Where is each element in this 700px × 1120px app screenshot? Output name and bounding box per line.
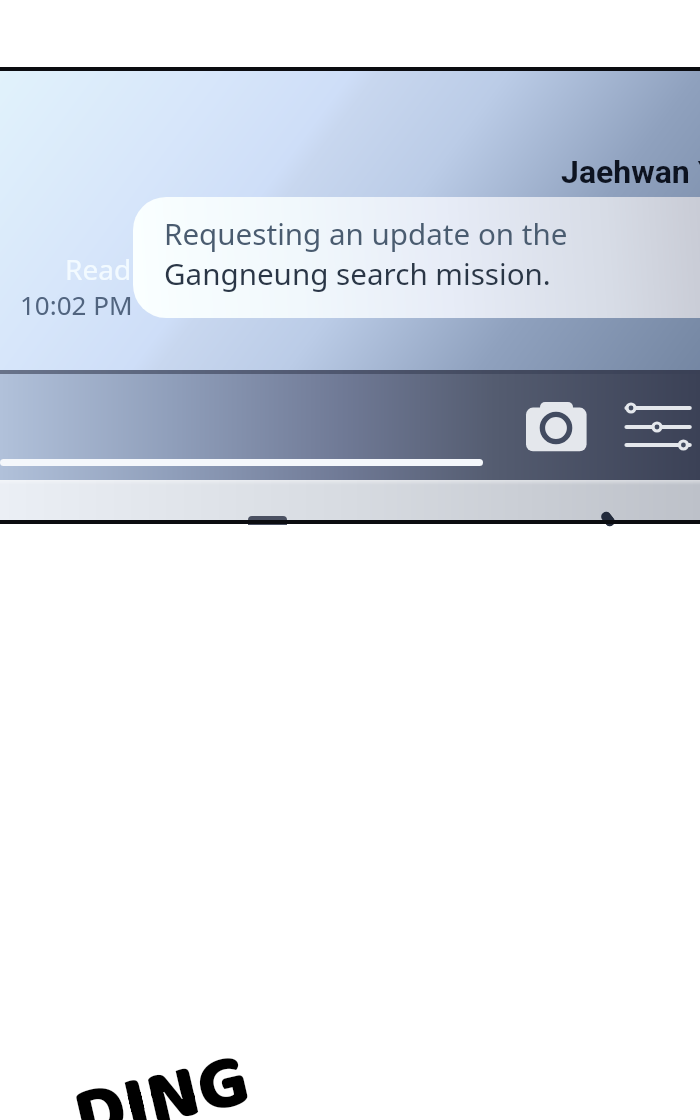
- button[interactable]: Camera: [522, 398, 592, 454]
- button[interactable]: Requesting an update on the: [133, 197, 700, 318]
- staticText: DING: [62, 1021, 261, 1120]
- staticText: 10:02 PM: [20, 287, 133, 322]
- staticText: Read: [65, 250, 132, 288]
- staticText: Jaehwan Y: [561, 153, 700, 191]
- button[interactable]: Settings: [620, 398, 696, 454]
- staticText: Gangneung search mission.: [164, 253, 551, 293]
- staticText: Requesting an update on the: [164, 213, 568, 253]
